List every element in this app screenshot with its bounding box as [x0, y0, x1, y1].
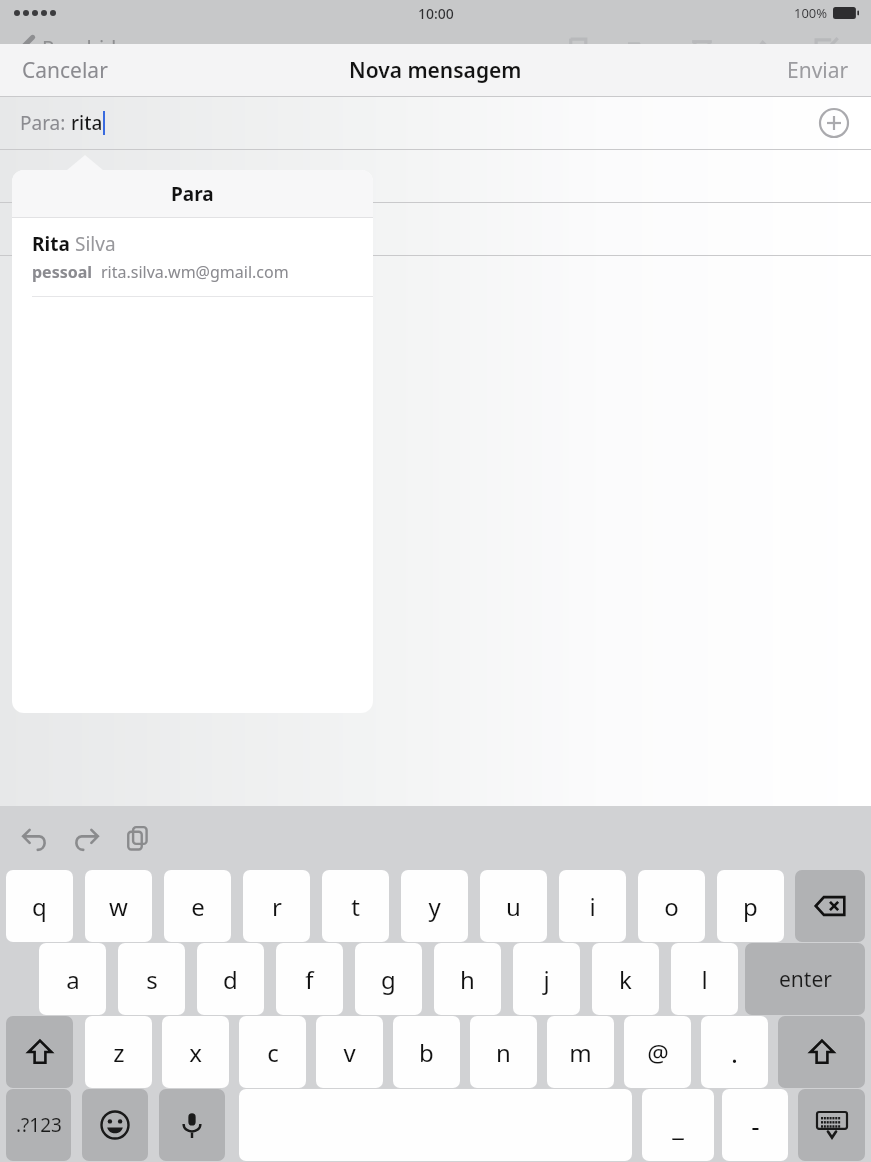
- button[interactable]: e: [164, 870, 231, 942]
- staticText: Rita: [32, 231, 75, 257]
- button[interactable]: Cancelar: [0, 44, 130, 96]
- button[interactable]: f: [276, 943, 343, 1015]
- staticText: m: [569, 1036, 592, 1069]
- staticText: f: [305, 963, 314, 996]
- button[interactable]: enter: [745, 943, 865, 1015]
- staticText: pessoal: [32, 261, 101, 283]
- staticText: rita: [71, 110, 103, 136]
- button[interactable]: s: [118, 943, 185, 1015]
- staticText: j: [543, 963, 550, 996]
- staticText: e: [191, 890, 205, 923]
- button[interactable]: Shift: [6, 1016, 73, 1088]
- button[interactable]: l: [671, 943, 738, 1015]
- button[interactable]: a: [39, 943, 106, 1015]
- button[interactable]: _: [642, 1089, 714, 1161]
- staticText: t: [351, 890, 360, 923]
- button[interactable]: paste: [112, 818, 164, 858]
- button[interactable]: Enviar: [765, 44, 871, 96]
- button[interactable]: r: [243, 870, 310, 942]
- staticText: z: [113, 1036, 125, 1069]
- staticText: u: [506, 890, 521, 923]
- button[interactable]: n: [470, 1016, 537, 1088]
- staticText: s: [146, 963, 158, 996]
- button[interactable]: [0, 203, 871, 255]
- staticText: 10:00: [418, 4, 454, 23]
- staticText: v: [343, 1036, 356, 1069]
- button[interactable]: k: [592, 943, 659, 1015]
- staticText: _: [672, 1108, 684, 1143]
- button[interactable]: t: [322, 870, 389, 942]
- staticText: y: [428, 890, 441, 923]
- staticText: h: [460, 963, 475, 996]
- button[interactable]: v: [316, 1016, 383, 1088]
- staticText: o: [664, 890, 679, 923]
- button[interactable]: Hide keyboard: [798, 1089, 865, 1161]
- button[interactable]: Voice input: [159, 1089, 225, 1161]
- staticText: a: [66, 963, 80, 996]
- staticText: Para: [171, 181, 214, 207]
- button[interactable]: Emoji: [82, 1089, 148, 1161]
- button[interactable]: Backspace: [795, 870, 865, 942]
- staticText: Enviar: [787, 56, 849, 84]
- button[interactable]: -: [722, 1089, 788, 1161]
- staticText: b: [419, 1036, 434, 1069]
- button[interactable]: w: [85, 870, 152, 942]
- button[interactable]: h: [434, 943, 501, 1015]
- staticText: Recebido: [42, 34, 129, 61]
- button[interactable]: Para:: [0, 97, 871, 149]
- staticText: l: [701, 963, 708, 996]
- staticText: enter: [779, 965, 832, 994]
- button[interactable]: d: [197, 943, 264, 1015]
- staticText: x: [189, 1036, 202, 1069]
- button[interactable]: q: [6, 870, 73, 942]
- button[interactable]: Shift right: [778, 1016, 865, 1088]
- staticText: 100%: [794, 4, 828, 22]
- button[interactable]: .?123: [6, 1089, 71, 1161]
- staticText: n: [496, 1036, 511, 1069]
- button[interactable]: z: [85, 1016, 152, 1088]
- staticText: Nova mensagem: [349, 56, 522, 85]
- button[interactable]: c: [239, 1016, 306, 1088]
- staticText: -: [751, 1108, 760, 1143]
- staticText: g: [381, 963, 396, 996]
- button[interactable]: redo: [60, 818, 112, 858]
- staticText: r: [272, 890, 282, 923]
- staticText: q: [32, 890, 47, 923]
- staticText: @: [647, 1036, 669, 1069]
- button[interactable]: b: [393, 1016, 460, 1088]
- button[interactable]: j: [513, 943, 580, 1015]
- button[interactable]: Rita: [12, 218, 373, 296]
- staticText: .: [731, 1035, 738, 1070]
- button[interactable]: y: [401, 870, 468, 942]
- staticText: c: [267, 1036, 279, 1069]
- staticText: Para:: [20, 110, 71, 136]
- button[interactable]: u: [480, 870, 547, 942]
- button[interactable]: Add contact: [819, 108, 849, 138]
- staticText: w: [109, 890, 128, 923]
- button[interactable]: m: [547, 1016, 614, 1088]
- staticText: Silva: [75, 231, 116, 257]
- button[interactable]: .: [701, 1016, 768, 1088]
- button[interactable]: @: [624, 1016, 691, 1088]
- staticText: Cancelar: [22, 56, 108, 84]
- button[interactable]: g: [355, 943, 422, 1015]
- staticText: rita.silva.wm@gmail.com: [101, 261, 289, 283]
- staticText: i: [589, 890, 596, 923]
- staticText: p: [743, 890, 758, 923]
- staticText: d: [223, 963, 238, 996]
- staticText: .?123: [16, 1112, 62, 1138]
- button[interactable]: i: [559, 870, 626, 942]
- button[interactable]: undo: [8, 818, 60, 858]
- button[interactable]: [0, 150, 871, 202]
- button[interactable]: o: [638, 870, 705, 942]
- button[interactable]: p: [717, 870, 784, 942]
- staticText: k: [619, 963, 632, 996]
- button[interactable]: x: [162, 1016, 229, 1088]
